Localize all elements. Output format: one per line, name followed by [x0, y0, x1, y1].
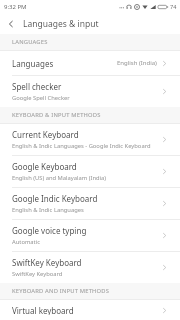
staticText: Google Keyboard — [12, 161, 77, 172]
staticText: 74 — [170, 3, 177, 10]
staticText: Spell checker — [12, 81, 62, 92]
staticText: Virtual keyboard — [12, 305, 74, 315]
staticText: Google voice typing — [12, 225, 87, 236]
staticText: SwiftKey Keyboard — [12, 270, 63, 278]
staticText: SwiftKey Keyboard — [12, 257, 82, 268]
staticText: English (India) — [117, 59, 157, 67]
button[interactable]: Google voice typing — [0, 220, 180, 252]
staticText: LANGUAGES — [12, 38, 48, 46]
staticText: Google Indic Keyboard — [12, 193, 98, 204]
staticText: Automatic — [12, 238, 40, 246]
staticText: Languages — [12, 58, 54, 69]
button[interactable]: Back — [0, 13, 21, 34]
staticText: English (US) and Malayalam (India) — [12, 174, 107, 182]
staticText: English & Indic Languages - Google Indic… — [12, 142, 151, 150]
button[interactable]: Google Keyboard — [0, 156, 180, 188]
button[interactable]: SwiftKey Keyboard — [0, 252, 180, 283]
staticText: 9:32 PM — [4, 3, 27, 11]
staticText: KEYBOARD AND INPUT METHODS — [12, 287, 110, 295]
button[interactable]: Virtual keyboard — [0, 300, 180, 320]
button[interactable]: Google Indic Keyboard — [0, 188, 180, 220]
button[interactable]: Current Keyboard — [0, 124, 180, 156]
staticText: Google Spell Checker — [12, 94, 70, 102]
button[interactable]: Spell checker — [0, 76, 180, 107]
staticText: English & Indic Languages — [12, 206, 84, 214]
staticText: KEYBOARD & INPUT METHODS — [12, 111, 101, 119]
staticText: Languages & input — [23, 18, 99, 30]
staticText: Current Keyboard — [12, 129, 79, 140]
button[interactable]: Languages — [0, 51, 180, 76]
